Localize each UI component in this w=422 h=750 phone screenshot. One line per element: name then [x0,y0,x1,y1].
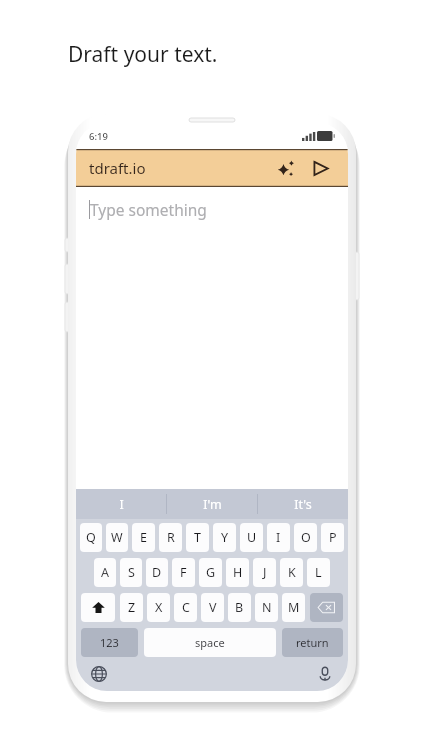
button[interactable]: K [280,558,303,587]
button[interactable]: X [147,593,170,622]
staticText: V [209,599,217,616]
staticText: P [329,529,337,546]
button[interactable]: U [240,523,263,552]
staticText: U [247,529,257,546]
button[interactable]: E [132,523,155,552]
staticText: Type something [90,199,207,220]
staticText: E [140,529,147,546]
button[interactable]: R [159,523,182,552]
button[interactable]: T [186,523,209,552]
button[interactable]: 123 [81,628,138,657]
button[interactable]: G [199,558,222,587]
button[interactable]: space [144,628,276,657]
staticText: R [167,529,175,546]
staticText: L [315,564,322,581]
staticText: J [263,564,267,581]
staticText: return [296,635,329,650]
staticText: Draft your text. [68,40,218,69]
button[interactable]: N [255,593,278,622]
button[interactable]: M [282,593,305,622]
button[interactable]: P [321,523,344,552]
staticText: B [235,599,244,616]
staticText: 6:19 [89,130,108,143]
button[interactable]: Send [305,153,335,183]
staticText: D [152,564,162,581]
button[interactable]: A [94,558,116,587]
staticText: W [111,529,123,546]
staticText: T [194,529,201,546]
button[interactable]: return [282,628,343,657]
button[interactable]: I [76,489,166,519]
button[interactable]: D [146,558,168,587]
button[interactable]: I [267,523,290,552]
staticText: G [206,564,216,581]
staticText: H [233,564,243,581]
button[interactable]: Shift [81,593,115,622]
button[interactable]: W [106,523,128,552]
staticText: C [182,599,190,616]
button[interactable]: F [172,558,195,587]
staticText: I [119,496,124,513]
button[interactable]: O [294,523,317,552]
staticText: N [262,599,272,616]
button[interactable]: Y [213,523,236,552]
button[interactable]: V [201,593,224,622]
button[interactable]: J [253,558,276,587]
button[interactable]: B [228,593,251,622]
button[interactable]: I'm [167,489,257,519]
staticText: M [288,599,300,616]
button[interactable]: S [120,558,142,587]
staticText: K [288,564,296,581]
staticText: X [155,599,163,616]
button[interactable]: L [307,558,330,587]
button[interactable]: It's [258,489,348,519]
staticText: Y [221,529,229,546]
staticText: Z [128,599,136,616]
button[interactable]: H [226,558,249,587]
button[interactable]: AI suggestions [271,153,301,183]
button[interactable]: Q [80,523,102,552]
staticText: 123 [100,635,119,650]
staticText: I'm [203,496,222,513]
staticText: F [180,564,187,581]
button[interactable]: Voice input [312,661,338,687]
button[interactable]: tdraft.io [76,149,348,187]
staticText: I [276,529,281,546]
staticText: Q [86,529,96,546]
button[interactable]: C [174,593,197,622]
staticText: O [301,529,311,546]
staticText: space [195,635,225,650]
staticText: A [101,564,109,581]
button[interactable]: Backspace [310,593,343,622]
button[interactable]: Z [120,593,143,622]
button[interactable]: Change keyboard language [86,661,112,687]
staticText: It's [294,496,312,513]
staticText: tdraft.io [89,158,146,178]
staticText: S [128,564,135,581]
